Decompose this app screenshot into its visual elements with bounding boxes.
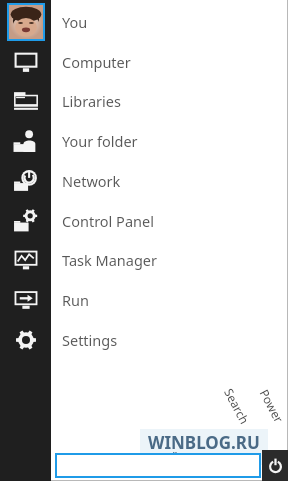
staticText: Search — [221, 385, 253, 427]
button[interactable]: Task Manager — [0, 240, 288, 280]
staticText: Task Manager — [62, 250, 157, 270]
staticText: ВСЁ О WINDOWS — [158, 451, 246, 465]
staticText: Libraries — [62, 91, 121, 111]
button[interactable]: Libraries — [0, 81, 288, 121]
button[interactable]: Control Panel — [0, 201, 288, 241]
button[interactable]: Your folder — [0, 121, 288, 161]
staticText: Settings — [62, 330, 118, 350]
staticText: You — [62, 12, 88, 32]
staticText: Power — [256, 386, 287, 426]
button[interactable]: Power — [262, 450, 288, 481]
staticText: Network — [62, 171, 121, 191]
staticText: Control Panel — [62, 211, 154, 231]
staticText: Run — [62, 290, 89, 310]
button[interactable]: Settings — [0, 320, 288, 360]
staticText: Computer — [62, 52, 131, 72]
button[interactable]: Run — [0, 280, 288, 320]
button[interactable]: Network — [0, 161, 288, 201]
button[interactable]: Computer — [0, 42, 288, 82]
staticText: WINBLOG.RU — [148, 431, 260, 454]
button[interactable]: You — [0, 2, 288, 42]
staticText: Your folder — [62, 131, 138, 151]
